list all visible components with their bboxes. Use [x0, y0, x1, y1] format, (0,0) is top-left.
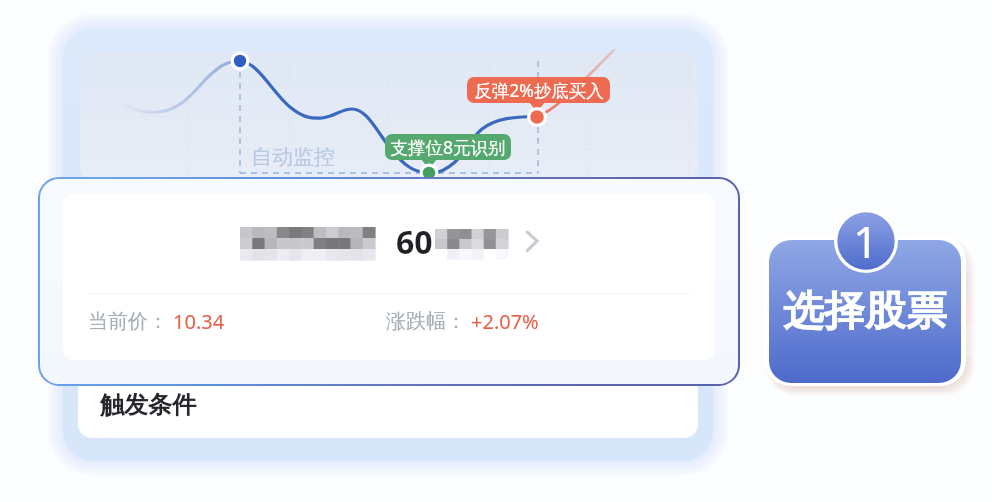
button[interactable]: 选择股票: [769, 240, 961, 383]
other: Open stock detail: [522, 226, 548, 256]
staticText: 选择股票: [783, 286, 947, 338]
staticText: 60: [396, 220, 433, 264]
staticText: 触发条件: [100, 390, 196, 420]
button[interactable]: 60: [63, 193, 715, 360]
staticText: +2.07%: [471, 308, 539, 335]
staticText: 1: [853, 211, 879, 271]
staticText: 10.34: [173, 308, 225, 335]
staticText: 支撑位8元识别: [390, 135, 506, 159]
staticText: 自动监控: [251, 144, 335, 170]
staticText: 当前价：: [88, 309, 168, 334]
button[interactable]: 触发条件: [78, 377, 698, 438]
staticText: 反弹2%抄底买入: [474, 78, 604, 102]
staticText: 涨跌幅：: [386, 309, 466, 334]
